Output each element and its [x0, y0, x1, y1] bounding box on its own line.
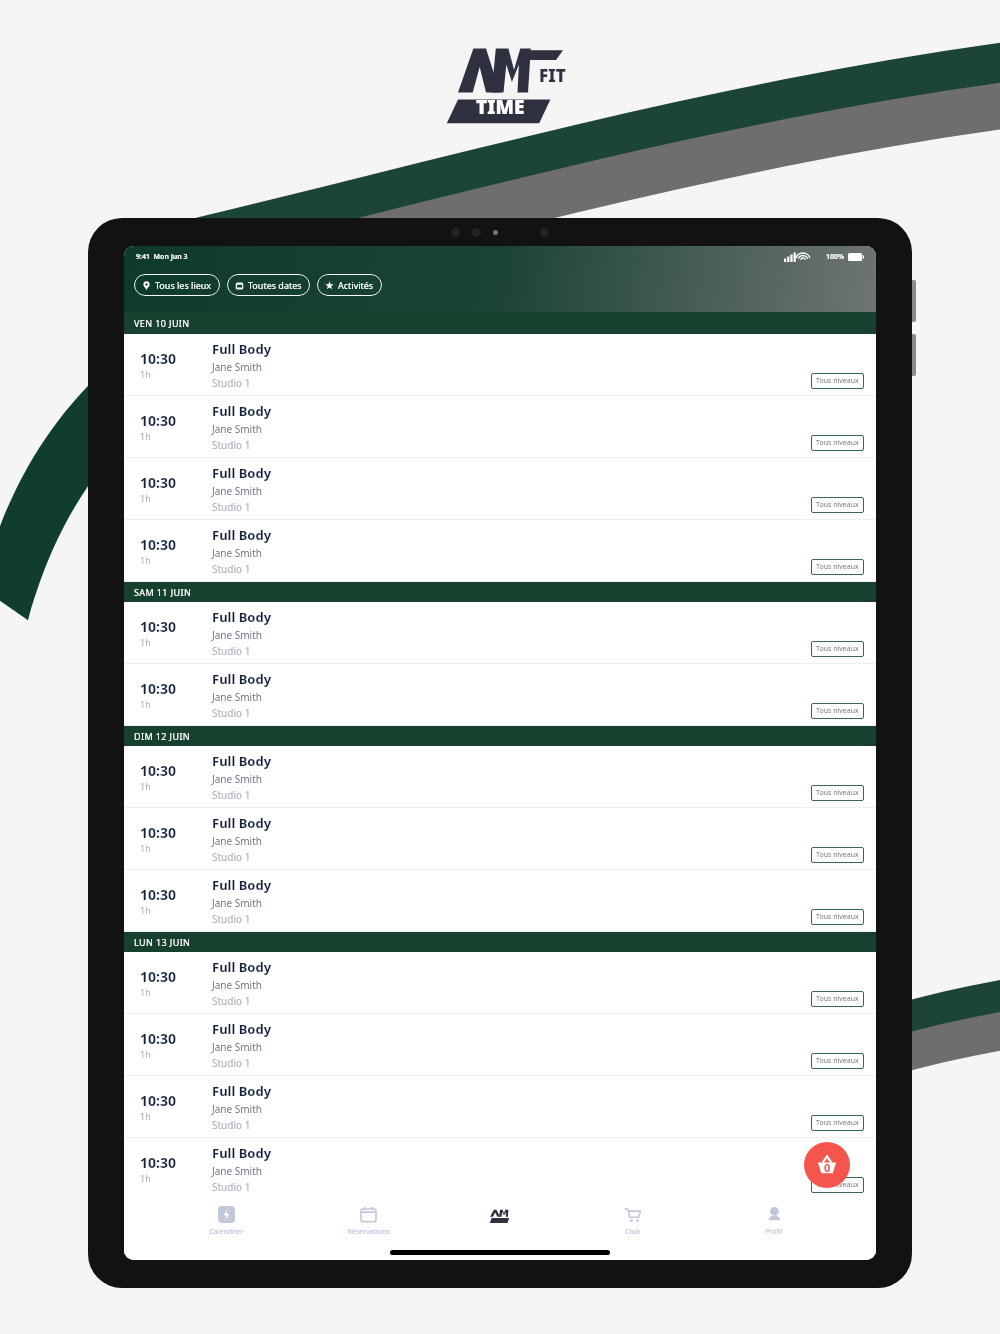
staticText: Calendrier [209, 1227, 244, 1237]
staticText: Toutes dates [248, 279, 302, 291]
staticText: Studio 1 [212, 644, 251, 658]
staticText: Studio 1 [212, 500, 251, 514]
button[interactable]: Tous niveaux [811, 1115, 864, 1131]
button[interactable]: Tous niveaux [811, 1177, 864, 1193]
button[interactable]: 10:30 [124, 1014, 876, 1076]
button[interactable]: 10:30 [124, 870, 876, 932]
staticText: VEN 10 JUIN [134, 317, 190, 329]
staticText: Tous niveaux [816, 912, 859, 922]
button[interactable]: Tous les lieux [134, 274, 220, 296]
button[interactable]: 10:30 [124, 458, 876, 520]
staticText: 1h [140, 842, 151, 854]
button[interactable]: 10:30 [124, 602, 876, 664]
staticText: Jane Smith [212, 1164, 262, 1178]
staticText: 10:30 [140, 1029, 176, 1048]
staticText: Jane Smith [212, 834, 262, 848]
button[interactable]: Tous niveaux [811, 641, 864, 657]
button[interactable]: Tous niveaux [811, 785, 864, 801]
staticText: SAM 11 JUIN [134, 586, 192, 598]
button[interactable]: Tous niveaux [811, 1053, 864, 1069]
staticText: Full Body [212, 958, 272, 976]
staticText: 1h [140, 986, 151, 998]
staticText: Activités [338, 279, 374, 291]
staticText: Studio 1 [212, 562, 251, 576]
staticText: 1h [140, 492, 151, 504]
button[interactable]: Tous niveaux [811, 559, 864, 575]
button[interactable]: Toutes dates [227, 274, 310, 296]
staticText: Tous niveaux [816, 994, 859, 1004]
staticText: 1h [140, 1048, 151, 1060]
button[interactable]: Accueil [478, 1194, 522, 1238]
staticText: DIM 12 JUIN [134, 730, 191, 742]
staticText: Full Body [212, 1082, 272, 1100]
button[interactable]: 10:30 [124, 334, 876, 396]
staticText: Tous niveaux [816, 1056, 859, 1066]
staticText: Tous niveaux [816, 644, 859, 654]
button[interactable]: Tous niveaux [811, 497, 864, 513]
staticText: Jane Smith [212, 422, 262, 436]
button[interactable]: 10:30 [124, 808, 876, 870]
staticText: 10:30 [140, 349, 176, 368]
staticText: Full Body [212, 340, 272, 358]
button[interactable]: Activités [317, 274, 382, 296]
staticText: Jane Smith [212, 360, 262, 374]
button[interactable]: 10:30 [124, 1076, 876, 1138]
button[interactable]: Tous niveaux [811, 847, 864, 863]
button[interactable]: 10:30 [124, 396, 876, 458]
button[interactable]: 10:30 [124, 952, 876, 1014]
button[interactable]: Tous niveaux [811, 909, 864, 925]
button[interactable]: Panier [804, 1142, 850, 1188]
button[interactable]: 10:30 [124, 746, 876, 808]
staticText: 1h [140, 780, 151, 792]
staticText: 1h [140, 698, 151, 710]
staticText: Tous niveaux [816, 500, 859, 510]
staticText: Club [625, 1227, 640, 1237]
button[interactable]: 10:30 [124, 1138, 876, 1200]
staticText: 0 [824, 1160, 831, 1175]
staticText: Tous niveaux [816, 562, 859, 572]
staticText: Profil [765, 1227, 783, 1237]
staticText: Tous niveaux [816, 1118, 859, 1128]
staticText: Tous niveaux [816, 1180, 859, 1190]
staticText: Full Body [212, 1020, 272, 1038]
staticText: Tous niveaux [816, 706, 859, 716]
button[interactable]: Réservations [328, 1204, 408, 1239]
button[interactable]: 10:30 [124, 664, 876, 726]
staticText: Full Body [212, 814, 272, 832]
staticText: Full Body [212, 608, 272, 626]
button[interactable]: Tous niveaux [811, 435, 864, 451]
staticText: Jane Smith [212, 1040, 262, 1054]
button[interactable]: Club [592, 1204, 672, 1239]
staticText: Tous niveaux [816, 376, 859, 386]
staticText: 10:30 [140, 535, 176, 554]
button[interactable]: Tous niveaux [811, 373, 864, 389]
staticText: Full Body [212, 402, 272, 420]
staticText: Studio 1 [212, 788, 251, 802]
staticText: Jane Smith [212, 546, 262, 560]
staticText: 9:41 Mon Jun 3 [136, 252, 188, 262]
staticText: 10:30 [140, 679, 176, 698]
button[interactable]: 10:30 [124, 520, 876, 582]
button[interactable]: Calendrier [186, 1204, 266, 1239]
staticText: 1h [140, 430, 151, 442]
button[interactable]: 10:30 [124, 1200, 876, 1260]
staticText: 10:30 [140, 885, 176, 904]
staticText: 10:30 [140, 1091, 176, 1110]
staticText: 10:30 [140, 1153, 176, 1172]
staticText: Studio 1 [212, 912, 251, 926]
button[interactable]: Tous niveaux [811, 991, 864, 1007]
button[interactable]: Profil [734, 1204, 814, 1239]
staticText: 10:30 [140, 411, 176, 430]
staticText: Réservations [347, 1227, 390, 1237]
staticText: 1h [140, 1110, 151, 1122]
staticText: 10:30 [140, 617, 176, 636]
staticText: Jane Smith [212, 484, 262, 498]
staticText: 1h [140, 636, 151, 648]
staticText: FIT [539, 64, 566, 87]
button[interactable]: Tous niveaux [811, 703, 864, 719]
staticText: Tous niveaux [816, 438, 859, 448]
